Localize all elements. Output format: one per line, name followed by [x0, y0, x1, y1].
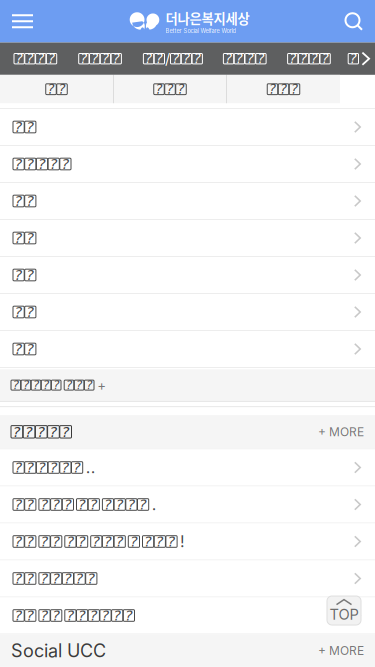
button[interactable]: ?	[0, 146, 375, 182]
staticText: + MORE	[318, 424, 364, 439]
staticText: ?	[127, 496, 135, 513]
staticText: ?	[15, 570, 23, 587]
button[interactable]: ?	[0, 449, 375, 485]
button[interactable]: More categories	[348, 43, 375, 75]
button[interactable]: ?	[143, 43, 202, 75]
staticText: ?	[257, 51, 264, 66]
staticText: ?	[116, 533, 124, 550]
staticText: ?	[194, 51, 201, 66]
staticText: ?	[38, 459, 46, 476]
button[interactable]: + MORE	[308, 637, 364, 664]
staticText: ?	[15, 607, 23, 624]
button[interactable]: ?	[223, 43, 266, 75]
staticText: ?	[144, 533, 152, 550]
button[interactable]: ?	[0, 220, 375, 256]
staticText: ?	[43, 378, 49, 392]
staticText: ?	[40, 570, 48, 587]
button[interactable]: ?	[0, 183, 375, 219]
button[interactable]: ?	[0, 294, 375, 330]
staticText: ?	[90, 496, 98, 513]
staticText: ?	[26, 51, 33, 66]
staticText: ?	[166, 81, 173, 97]
staticText: ?	[13, 378, 19, 392]
staticText: ?	[52, 607, 60, 624]
staticText: ?	[76, 378, 82, 392]
staticText: ?	[177, 81, 184, 97]
staticText: ?	[64, 496, 72, 513]
button[interactable]: ?	[0, 560, 375, 596]
staticText: ?	[53, 378, 59, 392]
staticText: ?	[47, 81, 54, 97]
button[interactable]: ?	[14, 43, 57, 75]
button[interactable]: ?	[114, 75, 226, 103]
button[interactable]: Search	[332, 0, 375, 42]
staticText: ?	[38, 155, 46, 173]
staticText: ?	[172, 51, 179, 66]
staticText: ?	[26, 303, 34, 321]
staticText: +	[97, 377, 106, 393]
staticText: ?	[52, 496, 60, 513]
staticText: ..	[86, 458, 96, 477]
staticText: ?	[289, 51, 296, 66]
button[interactable]: ?	[0, 486, 375, 522]
button[interactable]: ?	[0, 257, 375, 293]
staticText: ?	[269, 81, 276, 97]
staticText: TOP	[329, 606, 358, 623]
staticText: ?	[26, 155, 34, 173]
staticText: ?	[125, 607, 133, 624]
staticText: ?	[113, 51, 120, 66]
staticText: ?	[322, 51, 329, 66]
staticText: + MORE	[318, 643, 364, 658]
staticText: ?	[50, 459, 58, 476]
staticText: ?	[61, 155, 69, 173]
staticText: ?	[26, 570, 34, 587]
staticText: ?	[183, 51, 190, 66]
staticText: ?	[225, 51, 232, 66]
staticText: ?	[155, 81, 162, 97]
staticText: ?	[15, 340, 23, 358]
button[interactable]: Menu	[0, 0, 45, 42]
button[interactable]: ?	[0, 523, 375, 559]
button[interactable]: ?	[79, 43, 121, 75]
staticText: ?	[15, 229, 23, 247]
staticText: ?	[25, 423, 33, 440]
staticText: Social UCC	[11, 640, 106, 662]
staticText: ?	[73, 459, 81, 476]
button[interactable]: ?	[0, 331, 375, 367]
staticText: ?	[26, 459, 34, 476]
button[interactable]: ?	[227, 75, 340, 103]
staticText: ?	[145, 51, 152, 66]
button[interactable]: Scroll to top	[327, 596, 361, 625]
button[interactable]: ?	[0, 109, 375, 145]
staticText: ?	[15, 155, 23, 173]
staticText: ?	[130, 533, 138, 550]
staticText: ?	[236, 51, 243, 66]
staticText: ?	[50, 155, 58, 173]
button[interactable]: ?	[0, 369, 375, 401]
staticText: ?	[40, 496, 48, 513]
staticText: ?	[26, 192, 34, 210]
staticText: ?	[66, 378, 72, 392]
staticText: ?	[66, 607, 74, 624]
staticText: ?	[104, 496, 112, 513]
staticText: ?	[64, 570, 72, 587]
button[interactable]: + MORE	[308, 418, 364, 445]
button[interactable]: ?	[288, 43, 330, 75]
staticText: ?	[40, 533, 48, 550]
staticText: ?	[76, 570, 84, 587]
staticText: ?	[101, 607, 109, 624]
staticText: ?	[167, 533, 175, 550]
button[interactable]: ?	[0, 597, 375, 633]
button[interactable]: ?	[0, 75, 113, 103]
staticText: ?	[91, 51, 98, 66]
staticText: ?	[247, 51, 254, 66]
staticText: ?	[15, 192, 23, 210]
staticText: ?	[311, 51, 318, 66]
staticText: ?	[26, 496, 34, 513]
staticText: ?	[23, 378, 29, 392]
staticText: ?	[37, 51, 44, 66]
staticText: ?	[291, 81, 298, 97]
staticText: .	[152, 495, 157, 514]
staticText: ?	[13, 423, 21, 440]
staticText: ?	[15, 496, 23, 513]
